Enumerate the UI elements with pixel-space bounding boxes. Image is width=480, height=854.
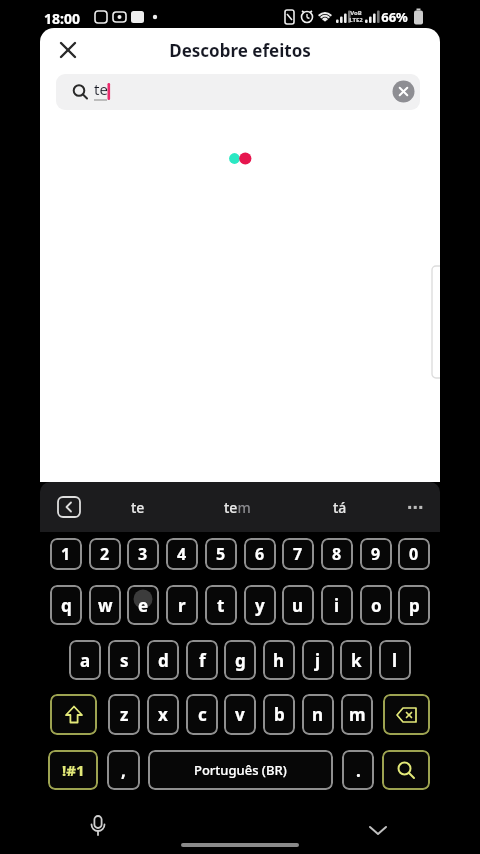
staticText: te bbox=[131, 498, 145, 517]
staticText: a bbox=[80, 649, 91, 672]
button[interactable]: g bbox=[224, 640, 256, 680]
staticText: x bbox=[158, 703, 168, 726]
button[interactable]: 6 bbox=[244, 538, 276, 570]
staticText: w bbox=[98, 594, 113, 617]
button[interactable]: te bbox=[108, 482, 168, 532]
staticText: b bbox=[274, 703, 285, 726]
staticText: 66% bbox=[381, 8, 408, 26]
button[interactable]: 9 bbox=[360, 538, 392, 570]
button[interactable]: f bbox=[186, 640, 218, 680]
staticText: 6 bbox=[255, 543, 265, 565]
button[interactable]: v bbox=[224, 694, 256, 735]
staticText: q bbox=[61, 594, 72, 617]
button[interactable] bbox=[362, 814, 394, 840]
button[interactable]: u bbox=[282, 585, 314, 625]
button[interactable]: k bbox=[340, 640, 372, 680]
staticText: VoB bbox=[350, 9, 362, 17]
staticText: n bbox=[312, 703, 324, 726]
staticText: z bbox=[120, 703, 129, 726]
staticText: te bbox=[94, 79, 108, 99]
button[interactable] bbox=[50, 694, 97, 735]
button[interactable]: b bbox=[263, 694, 295, 735]
button[interactable]: 8 bbox=[321, 538, 353, 570]
staticText: , bbox=[121, 759, 126, 782]
staticText: tá bbox=[333, 498, 347, 517]
staticText: d bbox=[158, 649, 169, 672]
button[interactable]: tem bbox=[207, 482, 267, 532]
staticText: u bbox=[292, 594, 304, 617]
button[interactable]: x bbox=[147, 694, 179, 735]
button[interactable] bbox=[54, 36, 82, 64]
staticText: Português (BR) bbox=[194, 761, 287, 779]
button[interactable]: w bbox=[89, 585, 121, 625]
staticText: 2 bbox=[100, 543, 110, 565]
button[interactable]: ⋯ bbox=[395, 482, 435, 532]
button[interactable]: tá bbox=[310, 482, 370, 532]
button[interactable]: a bbox=[69, 640, 101, 680]
button[interactable] bbox=[382, 750, 430, 790]
staticText: t bbox=[217, 594, 225, 617]
staticText: 9 bbox=[371, 543, 381, 565]
staticText: f bbox=[199, 649, 206, 672]
button[interactable] bbox=[82, 810, 114, 842]
button[interactable]: 2 bbox=[89, 538, 121, 570]
button[interactable]: t bbox=[205, 585, 237, 625]
staticText: h bbox=[273, 649, 285, 672]
staticText: 0 bbox=[409, 543, 419, 565]
staticText: o bbox=[371, 594, 382, 617]
staticText: v bbox=[235, 703, 245, 726]
button[interactable]: i bbox=[321, 585, 353, 625]
staticText: LTE2 bbox=[349, 16, 363, 24]
button[interactable]: l bbox=[379, 640, 411, 680]
button[interactable]: , bbox=[107, 750, 140, 790]
staticText: !#1 bbox=[62, 760, 85, 780]
staticText: e bbox=[138, 594, 149, 617]
button[interactable]: !#1 bbox=[48, 750, 98, 790]
button[interactable]: 5 bbox=[205, 538, 237, 570]
staticText: 8 bbox=[332, 543, 342, 565]
staticText: c bbox=[198, 703, 207, 726]
staticText: ⋯ bbox=[407, 498, 423, 517]
button[interactable]: 4 bbox=[166, 538, 198, 570]
staticText: 18:00 bbox=[44, 9, 80, 28]
button[interactable]: r bbox=[166, 585, 198, 625]
button[interactable]: y bbox=[244, 585, 276, 625]
button[interactable]: m bbox=[341, 694, 373, 735]
staticText: 1 bbox=[61, 543, 71, 565]
button[interactable]: e bbox=[127, 585, 159, 625]
staticText: . bbox=[356, 759, 361, 782]
button[interactable]: c bbox=[186, 694, 218, 735]
button[interactable]: te bbox=[56, 74, 420, 110]
button[interactable]: o bbox=[360, 585, 392, 625]
button[interactable]: . bbox=[342, 750, 374, 790]
button[interactable]: z bbox=[108, 694, 140, 735]
button[interactable]: 3 bbox=[127, 538, 159, 570]
button[interactable]: n bbox=[302, 694, 334, 735]
button[interactable]: 7 bbox=[282, 538, 314, 570]
button[interactable]: h bbox=[263, 640, 295, 680]
button[interactable]: Português (BR) bbox=[148, 750, 333, 790]
staticText: i bbox=[334, 594, 340, 617]
staticText: j bbox=[315, 649, 321, 672]
staticText: Descobre efeitos bbox=[169, 39, 311, 62]
staticText: 5 bbox=[216, 543, 226, 565]
staticText: s bbox=[120, 649, 129, 672]
staticText: l bbox=[392, 649, 398, 672]
staticText: 7 bbox=[293, 543, 303, 565]
staticText: r bbox=[178, 594, 186, 617]
staticText: 4 bbox=[177, 543, 187, 565]
button[interactable]: d bbox=[147, 640, 179, 680]
button[interactable]: s bbox=[108, 640, 140, 680]
button[interactable]: 1 bbox=[50, 538, 82, 570]
staticText: p bbox=[409, 594, 420, 617]
button[interactable] bbox=[383, 694, 430, 735]
staticText: y bbox=[255, 594, 265, 617]
button[interactable]: q bbox=[50, 585, 82, 625]
button[interactable]: p bbox=[398, 585, 430, 625]
staticText: m bbox=[349, 703, 366, 726]
staticText: 3 bbox=[138, 543, 148, 565]
button[interactable]: 0 bbox=[398, 538, 430, 570]
button[interactable]: j bbox=[302, 640, 334, 680]
staticText: g bbox=[235, 649, 246, 672]
button[interactable] bbox=[54, 492, 84, 522]
